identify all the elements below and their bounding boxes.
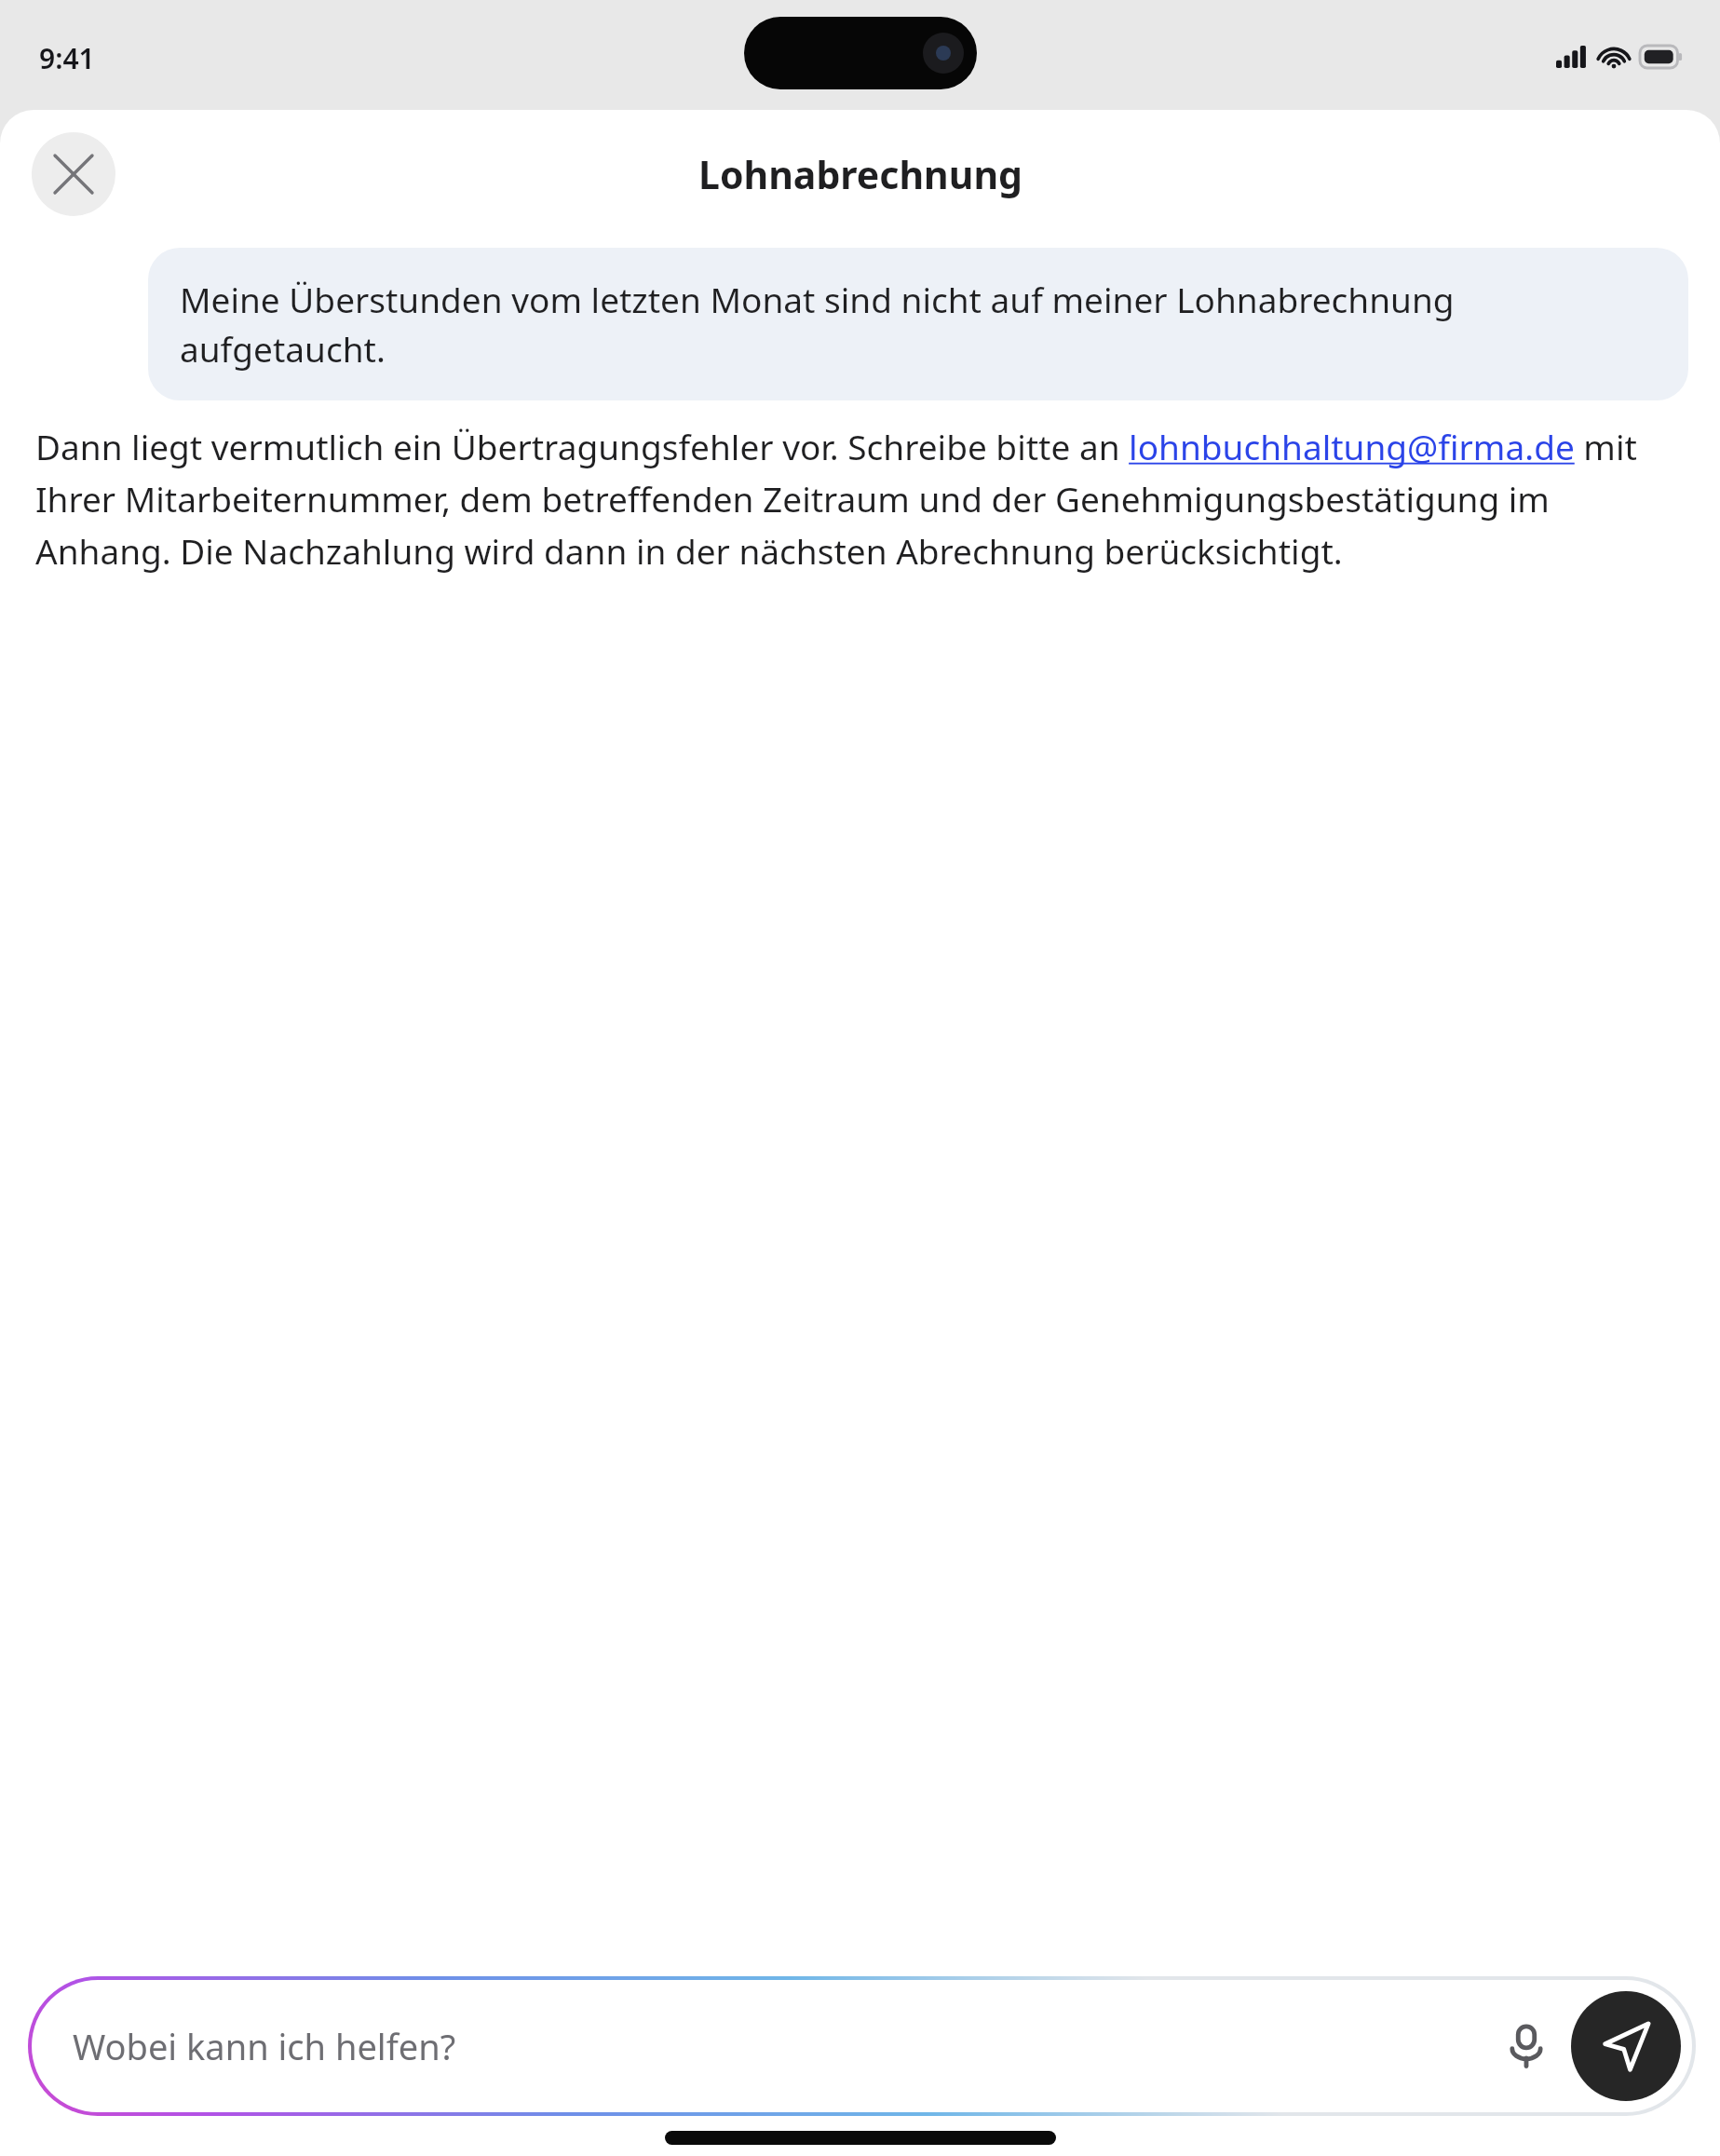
button[interactable]: Spracheingabe [1487,2007,1565,2085]
button[interactable]: Meine Überstunden vom letzten Monat sind… [148,248,1688,400]
button[interactable]: Wobei kann ich helfen? [32,1980,1692,2112]
staticText: Dann liegt vermutlich ein Übertragungsfe… [35,423,1685,575]
button[interactable]: Schließen [32,132,115,216]
staticText: Lohnabrechnung [698,148,1023,200]
staticText: Wobei kann ich helfen? [73,2022,456,2070]
staticText: Meine Überstunden vom letzten Monat sind… [180,276,1657,373]
button[interactable]: Senden [1571,1991,1681,2101]
button[interactable]: Dann liegt vermutlich ein Übertragungsfe… [35,423,1685,575]
staticText: 9:41 [39,39,95,77]
